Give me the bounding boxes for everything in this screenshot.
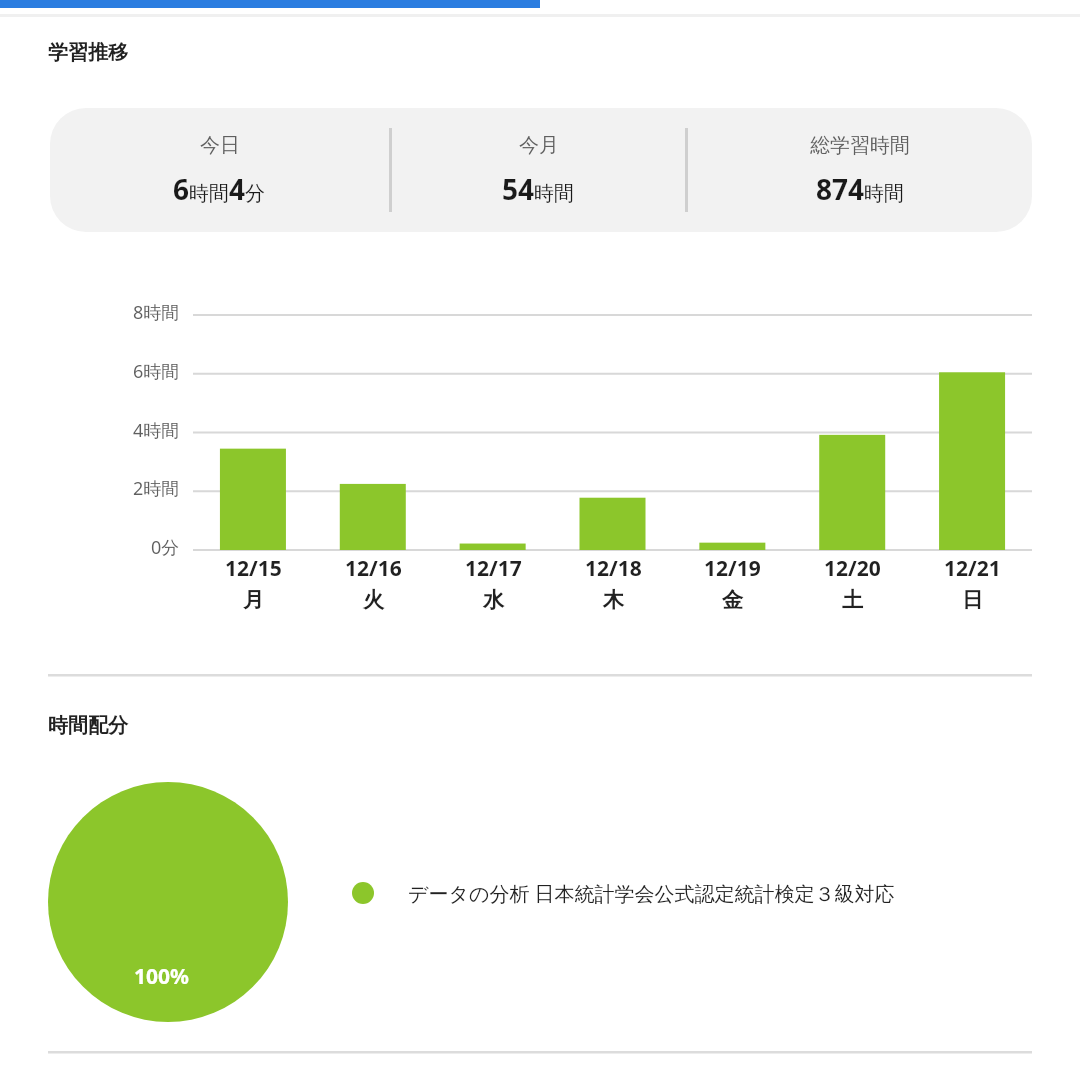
staticText: 今日 <box>200 133 240 158</box>
button[interactable]: データの分析 日本統計学会公式認定統計検定３級対応 <box>352 866 1032 920</box>
staticText: 12/16 <box>345 554 402 583</box>
staticText: 火 <box>363 587 384 613</box>
button[interactable]: 今日 <box>50 108 1032 232</box>
staticText: 2時間 <box>133 476 180 501</box>
staticText: 12/19 <box>704 554 761 583</box>
staticText: 12/17 <box>465 554 522 583</box>
staticText: 土 <box>842 587 863 613</box>
staticText: 54時間 <box>502 170 575 208</box>
staticText: 8時間 <box>133 300 180 325</box>
staticText: 総学習時間 <box>810 133 910 158</box>
staticText: 金 <box>722 587 743 613</box>
staticText: 12/21 <box>944 554 1001 583</box>
staticText: 今月 <box>519 133 559 158</box>
staticText: 日 <box>962 587 983 613</box>
staticText: 学習推移 <box>48 40 128 65</box>
button[interactable]: 今日 <box>50 108 389 232</box>
staticText: 12/15 <box>225 554 282 583</box>
staticText: 100% <box>134 962 189 991</box>
staticText: 時間配分 <box>48 713 128 738</box>
button[interactable]: 時間配分 円グラフ <box>48 782 288 1022</box>
staticText: 0分 <box>151 535 180 560</box>
staticText: 6時間4分 <box>173 170 266 208</box>
staticText: 6時間 <box>133 359 180 384</box>
staticText: 4時間 <box>133 418 180 443</box>
staticText: データの分析 日本統計学会公式認定統計検定３級対応 <box>408 880 895 907</box>
staticText: 月 <box>243 587 264 613</box>
button[interactable]: 今月 <box>392 108 685 232</box>
staticText: 12/20 <box>824 554 881 583</box>
staticText: 874時間 <box>816 170 905 208</box>
staticText: 水 <box>483 587 504 613</box>
button[interactable]: 総学習時間 <box>688 108 1032 232</box>
staticText: 12/18 <box>585 554 642 583</box>
staticText: 木 <box>603 587 624 613</box>
